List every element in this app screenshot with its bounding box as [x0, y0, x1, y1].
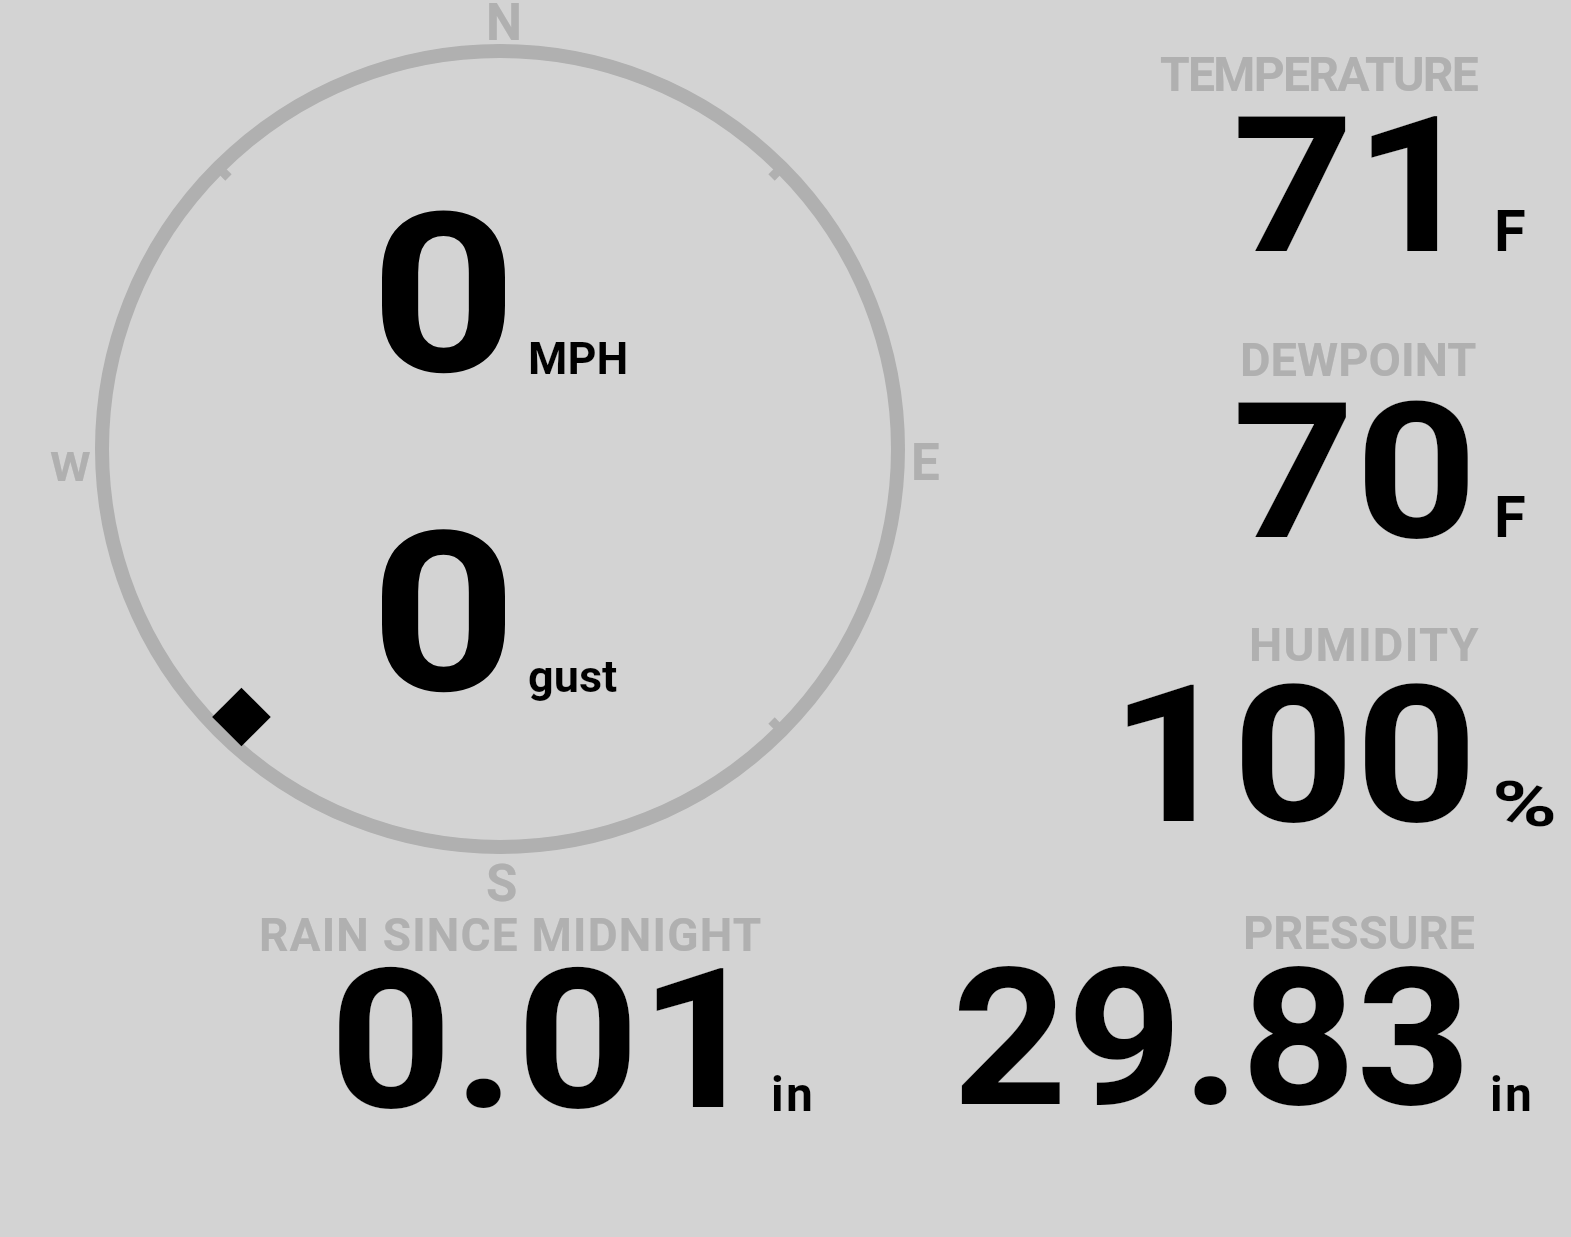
- button[interactable]: Temperature 71 degrees Fahrenheit: [1000, 20, 1571, 300]
- staticText: 9: [1067, 927, 1183, 1151]
- staticText: .: [1182, 927, 1241, 1151]
- staticText: in: [1490, 1066, 1535, 1122]
- button[interactable]: Wind speed and direction: [40, 0, 960, 900]
- staticText: MPH: [528, 332, 629, 385]
- staticText: 1: [639, 927, 763, 1154]
- staticText: F: [1494, 483, 1526, 551]
- staticText: 1: [1110, 643, 1234, 868]
- staticText: 8: [1241, 927, 1357, 1151]
- staticText: 0: [1232, 643, 1356, 868]
- staticText: E: [911, 433, 940, 493]
- staticText: .: [453, 927, 516, 1154]
- button[interactable]: Dew point 70 degrees Fahrenheit: [1000, 305, 1571, 590]
- staticText: 1: [1354, 75, 1477, 298]
- staticText: S: [486, 854, 518, 914]
- staticText: RAIN SINCE MIDNIGHT: [259, 908, 763, 962]
- staticText: PRESSURE: [1243, 905, 1475, 960]
- button[interactable]: Humidity 100 percent: [1000, 595, 1571, 880]
- staticText: %: [1492, 768, 1558, 842]
- staticText: 0: [370, 164, 517, 425]
- staticText: 0: [1355, 643, 1479, 868]
- staticText: 2: [952, 927, 1068, 1151]
- staticText: in: [771, 1066, 816, 1122]
- staticText: 0: [516, 927, 640, 1154]
- staticText: N: [486, 0, 523, 53]
- staticText: W: [50, 444, 91, 491]
- staticText: 7: [1232, 361, 1356, 584]
- staticText: 3: [1356, 927, 1472, 1151]
- staticText: 0: [329, 927, 453, 1154]
- staticText: 7: [1232, 75, 1355, 298]
- staticText: 0: [1355, 361, 1479, 584]
- staticText: TEMPERATURE: [1160, 46, 1478, 102]
- button[interactable]: Pressure 29.83 inches: [860, 895, 1571, 1135]
- staticText: F: [1494, 197, 1526, 265]
- staticText: DEWPOINT: [1240, 332, 1477, 387]
- staticText: HUMIDITY: [1249, 617, 1480, 672]
- button[interactable]: Rain since midnight 0.01 inches: [200, 895, 800, 1135]
- other: Weather station dashboard: [0, 0, 1571, 1237]
- staticText: gust: [528, 650, 618, 703]
- staticText: 0: [370, 483, 517, 744]
